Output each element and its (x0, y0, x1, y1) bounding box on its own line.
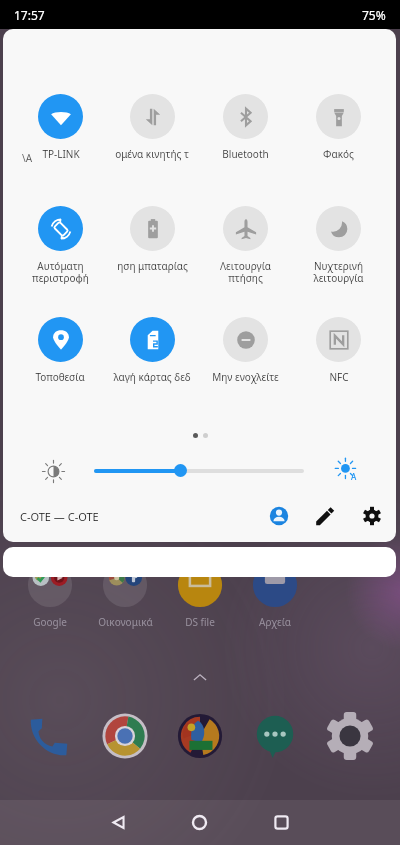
staticText: Οικονομικά (98, 615, 153, 629)
staticText: Λειτουργία πτήσης (220, 259, 271, 284)
staticText: A (351, 471, 357, 482)
staticText: 17:57 (14, 7, 45, 23)
button[interactable]: ηση μπαταρίας (106, 206, 198, 284)
button[interactable] (177, 562, 223, 608)
button[interactable]: Μην ενοχλείτε (199, 317, 291, 395)
staticText: NFC (329, 370, 349, 384)
staticText: λαγή κάρτας δεδ (113, 370, 191, 384)
button[interactable]: Edit (315, 506, 335, 526)
staticText: Φακός (323, 147, 354, 161)
staticText: Αυτόματη περιστροφή (32, 259, 89, 284)
button[interactable]: NFC (292, 317, 384, 395)
staticText: Μην ενοχλείτε (212, 370, 279, 384)
staticText: C-OTE — C-OTE (20, 509, 99, 524)
button[interactable]: C-OTE — C-OTE (20, 509, 99, 524)
staticText: 75% (362, 7, 386, 23)
staticText: Google (33, 615, 67, 629)
staticText: ομένα κινητής τ (115, 147, 189, 161)
button[interactable] (102, 562, 148, 608)
button[interactable] (252, 562, 298, 608)
staticText: Νυχτερινή λειτουργία (313, 259, 364, 284)
button[interactable] (176, 712, 224, 760)
button[interactable]: ομένα κινητής τ (106, 94, 198, 172)
button[interactable]: Back (108, 812, 129, 833)
button[interactable] (251, 712, 299, 760)
staticText: ηση μπαταρίας (117, 259, 188, 273)
staticText: Τοποθεσία (35, 370, 85, 384)
button[interactable] (27, 562, 73, 608)
button[interactable]: Bluetooth (199, 94, 291, 172)
button[interactable]: TP-LINK (14, 94, 106, 172)
button[interactable]: Λειτουργία πτήσης (199, 206, 291, 284)
staticText: DS file (185, 615, 215, 629)
button[interactable]: Αυτόματη περιστροφή (14, 206, 106, 284)
button[interactable]: Home (189, 812, 210, 833)
button[interactable] (26, 712, 74, 760)
button[interactable]: Recents (271, 812, 292, 833)
staticText: TP-LINK (42, 147, 80, 161)
button[interactable] (326, 712, 374, 760)
button[interactable]: Φακός (292, 94, 384, 172)
staticText: Bluetooth (222, 147, 269, 161)
button[interactable]: Settings (362, 506, 382, 526)
staticText: \A (22, 151, 33, 165)
button[interactable]: Auto brightness (334, 457, 360, 483)
staticText: Αρχεία (259, 615, 291, 629)
button[interactable]: Τοποθεσία (14, 317, 106, 395)
button[interactable]: Νυχτερινή λειτουργία (292, 206, 384, 284)
button[interactable]: Account (269, 506, 289, 526)
button[interactable] (101, 712, 149, 760)
button[interactable]: λαγή κάρτας δεδ (106, 317, 198, 395)
